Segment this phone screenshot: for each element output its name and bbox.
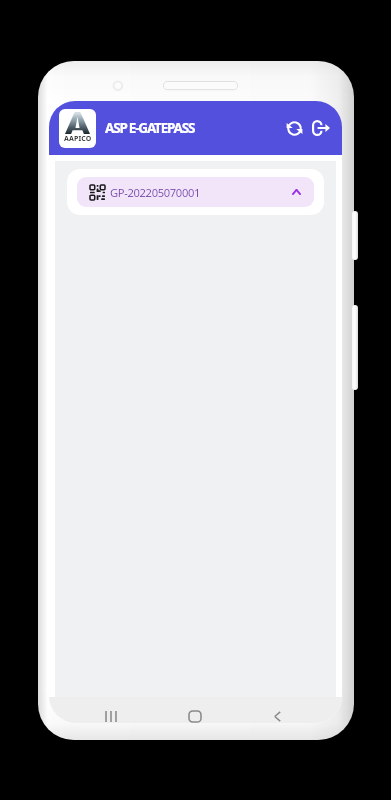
button[interactable]: GP-202205070001 <box>77 177 314 207</box>
button[interactable]: Refresh <box>281 115 307 141</box>
staticText: AAPICO <box>64 134 92 144</box>
button[interactable]: Back <box>236 697 319 722</box>
button[interactable]: Home <box>153 697 236 722</box>
button[interactable]: Recent apps <box>69 697 153 722</box>
staticText: ASP E-GATEPASS <box>105 119 195 137</box>
button[interactable]: AAPICO logo <box>59 109 96 148</box>
staticText: GP-202205070001 <box>110 185 201 200</box>
button[interactable]: Logout <box>308 115 334 141</box>
